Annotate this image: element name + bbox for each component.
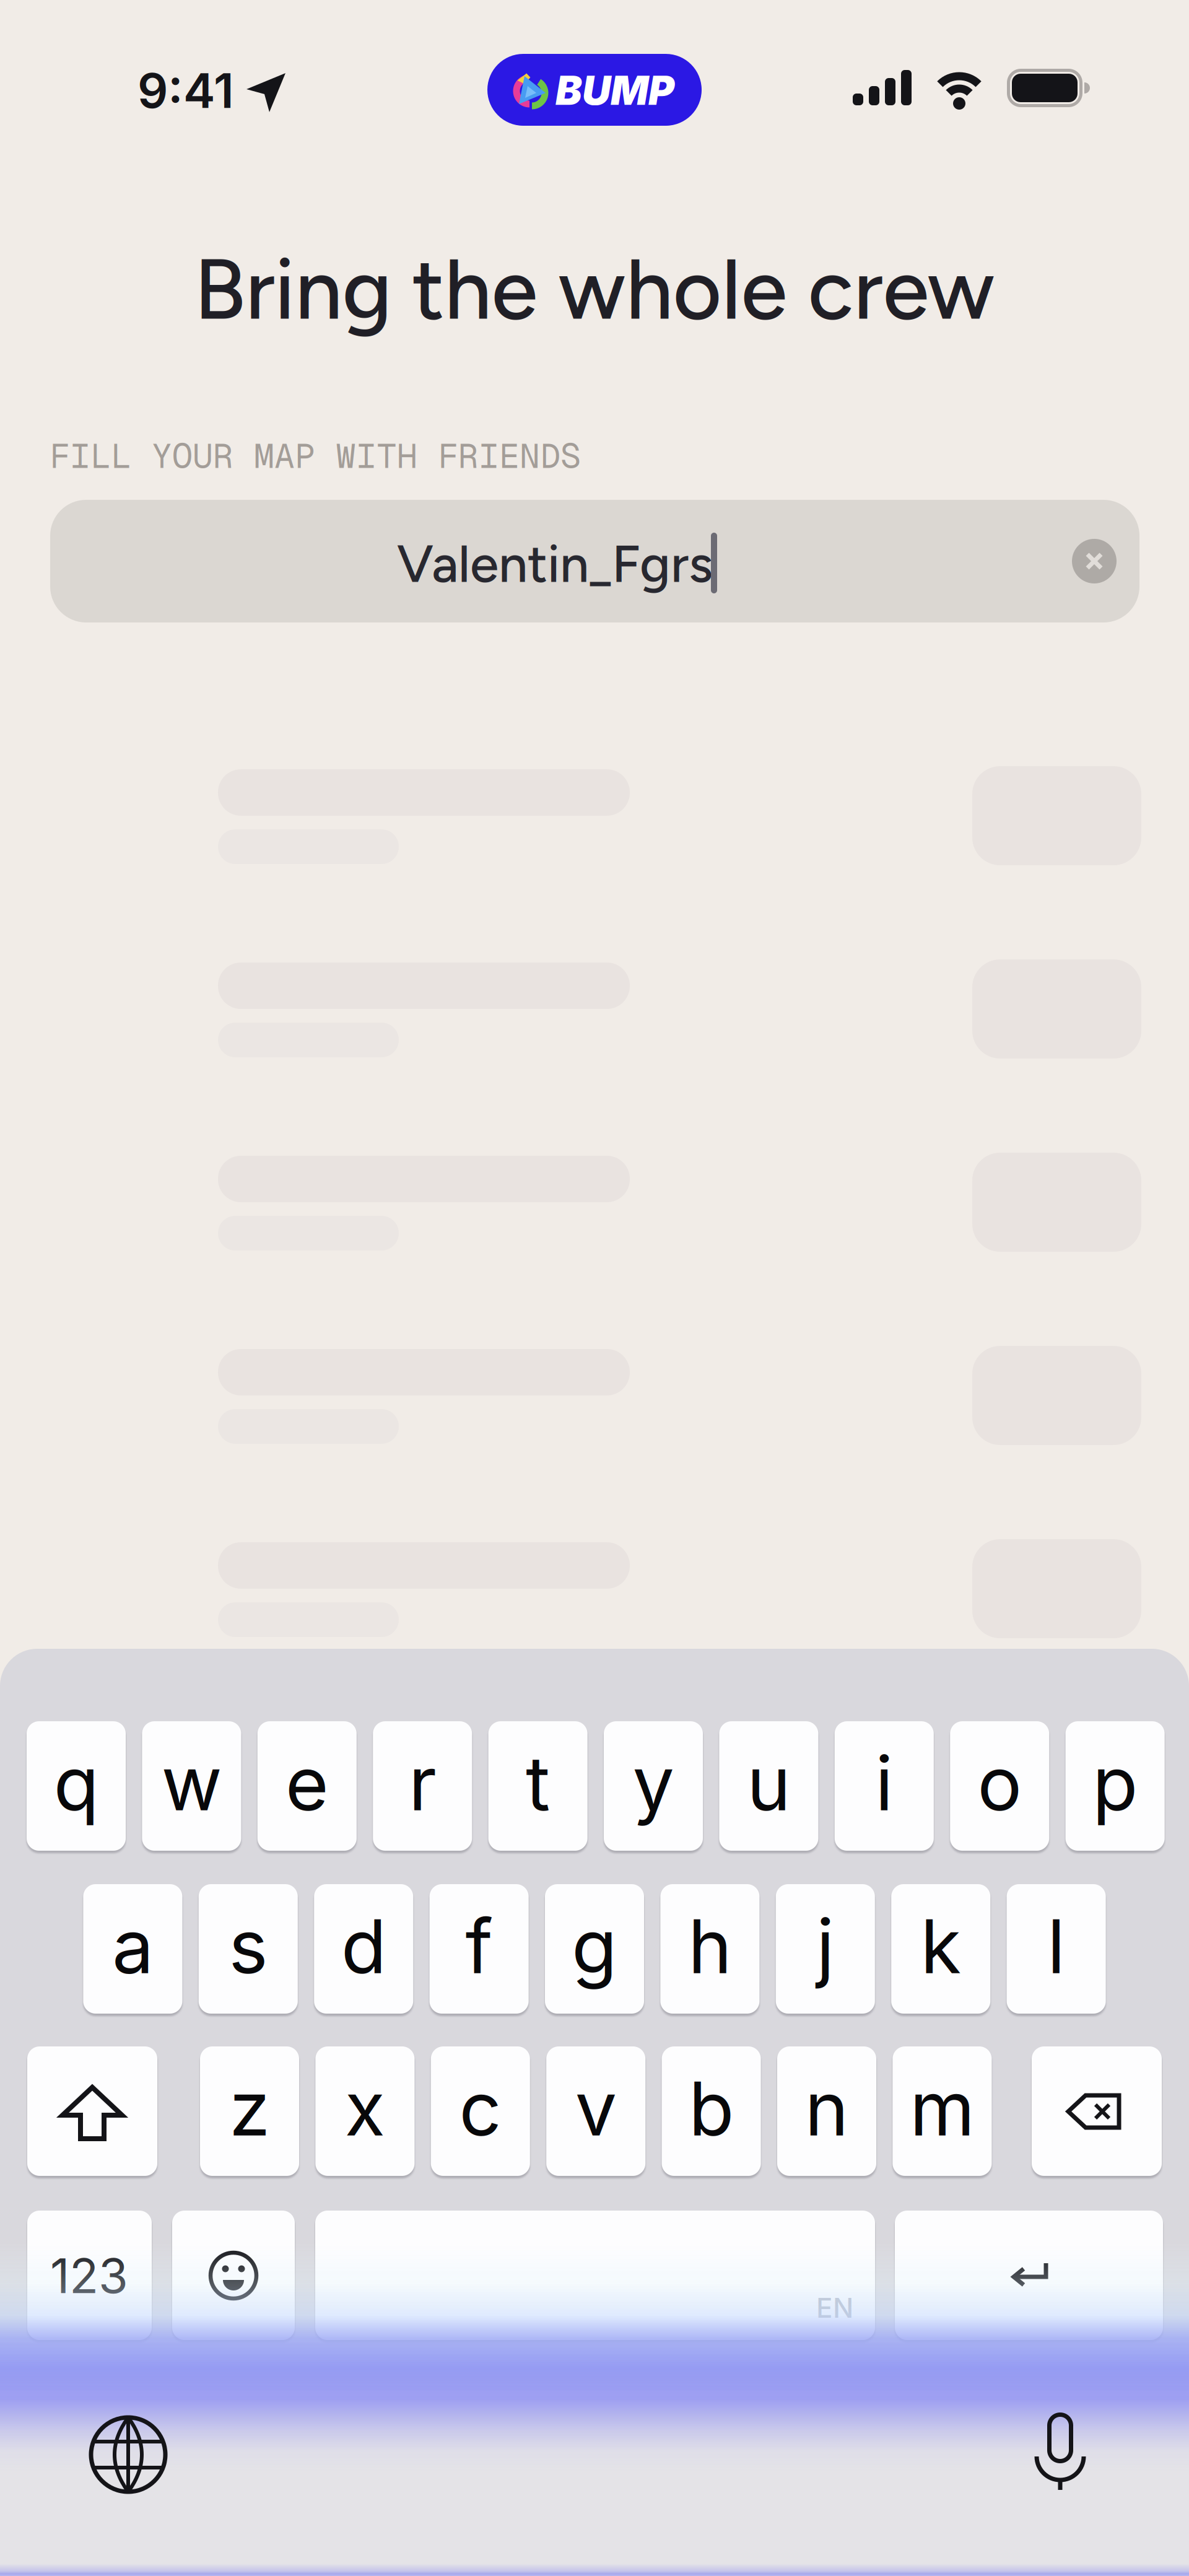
- staticText: h: [688, 1901, 732, 1991]
- staticText: r: [409, 1738, 436, 1828]
- staticText: l: [1047, 1901, 1065, 1991]
- staticText: FILL YOUR MAP WITH FRIENDS: [50, 434, 581, 478]
- staticText: q: [54, 1738, 99, 1828]
- staticText: x: [345, 2063, 385, 2153]
- staticText: o: [977, 1738, 1022, 1828]
- staticText: d: [341, 1901, 386, 1991]
- staticText: s: [229, 1901, 268, 1991]
- staticText: z: [229, 2063, 270, 2153]
- staticText: c: [459, 2063, 502, 2153]
- staticText: Valentin_Fgrs: [397, 532, 713, 595]
- staticText: p: [1092, 1738, 1138, 1828]
- staticText: v: [575, 2063, 617, 2153]
- staticText: f: [465, 1901, 493, 1991]
- staticText: a: [112, 1901, 154, 1991]
- staticText: e: [285, 1738, 329, 1828]
- staticText: n: [805, 2063, 849, 2153]
- staticText: u: [747, 1738, 791, 1828]
- staticText: Bring the whole crew: [194, 239, 995, 340]
- staticText: 9:41: [137, 61, 234, 119]
- staticText: y: [633, 1738, 674, 1828]
- staticText: i: [875, 1738, 893, 1828]
- staticText: t: [526, 1738, 550, 1828]
- staticText: b: [689, 2063, 734, 2153]
- staticText: g: [572, 1901, 617, 1991]
- staticText: w: [161, 1738, 222, 1828]
- staticText: BUMP: [555, 66, 674, 114]
- staticText: 123: [50, 2247, 128, 2305]
- staticText: j: [816, 1901, 834, 1991]
- staticText: m: [910, 2063, 975, 2153]
- staticText: k: [920, 1901, 961, 1991]
- staticText: EN: [816, 2291, 853, 2324]
